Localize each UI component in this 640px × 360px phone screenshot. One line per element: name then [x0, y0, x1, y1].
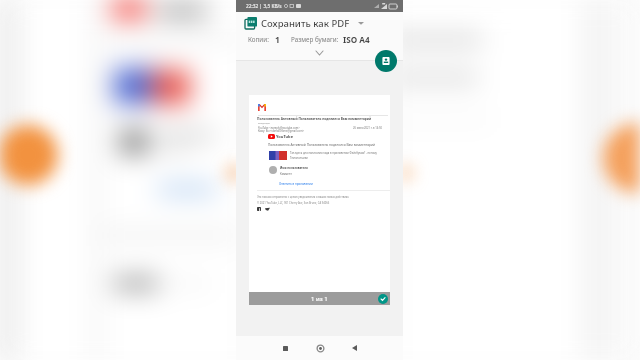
button[interactable]: Expand options: [236, 47, 403, 59]
button[interactable]: Home: [311, 339, 329, 357]
staticText: YouTube <noreply@youtube.com>: [258, 126, 300, 130]
staticText: 1: [275, 34, 280, 46]
staticText: Размер бумаги:: [291, 35, 339, 44]
staticText: Так здесь для написания кода в приложени…: [290, 151, 377, 155]
staticText: Пользователь Активный Пользователь подел…: [268, 143, 375, 147]
staticText: Это письмо отправлено с целью уведомлени…: [257, 195, 350, 199]
staticText: 1 из 1: [311, 295, 328, 303]
staticText: Кому: Вы <vbmail.home@gmail.com>: [258, 129, 305, 133]
button[interactable]: Recents: [276, 339, 294, 357]
staticText: Входящие: [258, 121, 270, 124]
staticText: YouTube: [276, 134, 294, 139]
staticText: Пользователь Активный Пользователь подел…: [257, 117, 372, 121]
staticText: Копии:: [248, 35, 269, 44]
staticText: Имя пользователя: [280, 166, 308, 170]
staticText: Сохранить как PDF: [261, 17, 350, 30]
staticText: ISO A4: [343, 34, 370, 45]
button[interactable]: Ответить в приложении: [279, 182, 313, 186]
button[interactable]: Back: [345, 339, 363, 357]
staticText: 26 июня 2021 г. в 14:50: [353, 126, 382, 130]
button[interactable]: Save as PDF: [375, 50, 397, 72]
button[interactable]: Confirm: [378, 294, 388, 304]
staticText: © 2021 YouTube, LLC, 901 Cherry Ave, San…: [257, 201, 330, 205]
staticText: Тюльпанчики: [290, 156, 308, 160]
button[interactable]: Сохранить как PDF: [245, 14, 403, 32]
button[interactable]: Пользователь Активный Пользователь подел…: [249, 95, 390, 292]
staticText: Коммент: [280, 172, 292, 176]
staticText: 22:32 | 3,5 KB/s: [246, 3, 282, 10]
